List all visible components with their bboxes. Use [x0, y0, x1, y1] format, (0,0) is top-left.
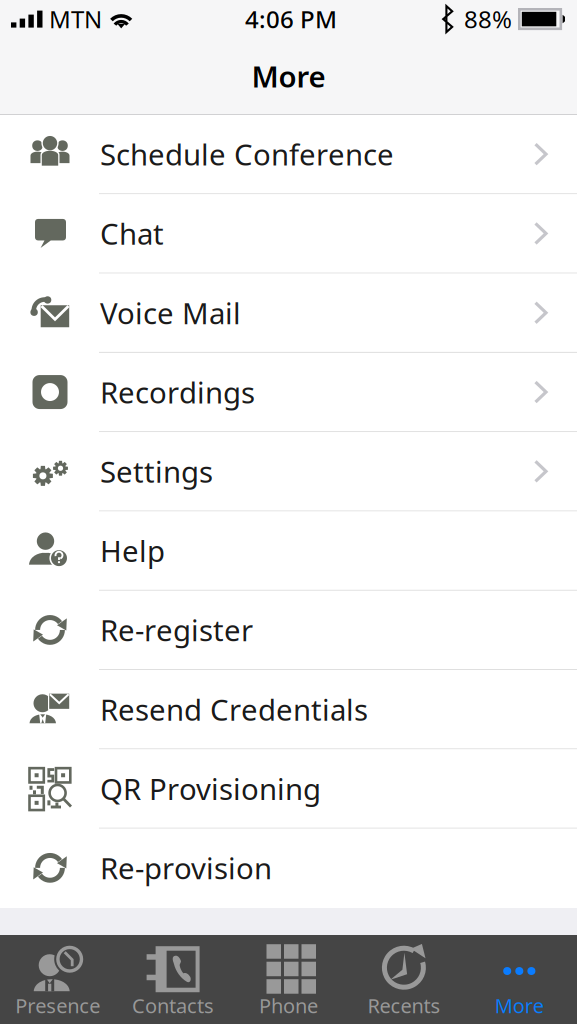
button[interactable]: Re-provision [0, 829, 577, 908]
staticText: Resend Credentials [100, 690, 368, 729]
button[interactable]: QR Provisioning [0, 749, 577, 829]
staticText: More [251, 56, 325, 95]
staticText: Presence [15, 992, 100, 1019]
staticText: Contacts [132, 992, 214, 1019]
button[interactable]: Presence [0, 935, 115, 1024]
button[interactable]: Phone [231, 935, 346, 1024]
button[interactable]: Re-register [0, 591, 577, 670]
button[interactable]: Recents [346, 935, 462, 1024]
staticText: Phone [259, 992, 318, 1019]
staticText: Re-provision [100, 848, 272, 887]
staticText: Recordings [100, 373, 255, 412]
staticText: QR Provisioning [100, 769, 321, 808]
staticText: Settings [100, 452, 213, 491]
button[interactable]: Contacts [115, 935, 231, 1024]
staticText: 4:06 PM [245, 3, 337, 35]
button[interactable]: Chat [0, 194, 577, 274]
staticText: Help [100, 531, 165, 570]
staticText: Re-register [100, 610, 253, 649]
staticText: 88% [464, 3, 512, 35]
button[interactable]: Settings [0, 432, 577, 511]
button[interactable]: Voice Mail [0, 274, 577, 353]
staticText: MTN [49, 3, 102, 35]
staticText: Chat [100, 214, 164, 253]
button[interactable]: Resend Credentials [0, 670, 577, 749]
button[interactable]: More [462, 935, 577, 1024]
button[interactable]: Schedule Conference [0, 115, 577, 194]
button[interactable]: Recordings [0, 353, 577, 432]
staticText: Schedule Conference [100, 135, 394, 174]
staticText: Voice Mail [100, 293, 241, 332]
staticText: Recents [367, 992, 440, 1019]
button[interactable]: Help [0, 511, 577, 591]
staticText: More [495, 992, 544, 1019]
